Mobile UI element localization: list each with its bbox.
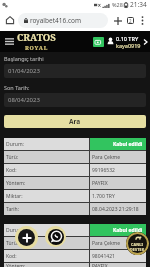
button[interactable]: Miktar: (4, 190, 146, 202)
button[interactable]: Add (15, 226, 38, 249)
staticText: Başlangıç tarihi (4, 55, 44, 62)
staticText: kaya0919 (116, 42, 141, 49)
staticText: 21:34 (130, 0, 147, 9)
button[interactable]: Türü: (4, 151, 146, 163)
staticText: Kabul edildi (113, 141, 143, 148)
button[interactable]: Durum: (4, 138, 146, 150)
button[interactable]: Canlı Destek (126, 232, 149, 255)
staticText: royalbet416.com (30, 16, 82, 25)
staticText: Durum: (6, 141, 24, 148)
staticText: Para Çekme (92, 154, 121, 161)
button[interactable]: Durum: (4, 224, 146, 236)
button[interactable]: Menu (3, 35, 16, 48)
staticText: Son Tarih: (4, 84, 30, 91)
staticText: 0.10 TRY (116, 35, 139, 42)
staticText: Türü: (6, 154, 19, 161)
staticText: PAYFIX (92, 263, 108, 267)
staticText: Kod: (6, 167, 17, 174)
staticText: Türü: (6, 240, 19, 247)
staticText: 08.04.2023 21:29:18 (92, 206, 139, 213)
staticText: Ara (69, 117, 81, 126)
staticText: CANLI (131, 242, 144, 247)
button[interactable]: royalbet416.com (18, 13, 108, 28)
staticText: CRATOS (17, 31, 56, 44)
button[interactable]: Kod: (4, 250, 146, 262)
staticText: 1.700 TRY (92, 193, 115, 200)
staticText: Kabul edildi (113, 227, 143, 234)
staticText: DESTEK (130, 247, 145, 252)
staticText: PAYFIX (92, 180, 108, 187)
staticText: Yöntem: (6, 180, 26, 187)
staticText: Durum: (6, 227, 24, 234)
staticText: Para Çekme (92, 240, 121, 247)
button[interactable]: Home (3, 13, 17, 27)
button[interactable]: Ara (4, 115, 146, 128)
button[interactable]: 08/04/2023 (4, 93, 146, 107)
button[interactable]: Tabs (124, 14, 137, 27)
staticText: 2 (129, 18, 132, 24)
button[interactable]: Kod: (4, 164, 146, 176)
staticText: ROYAL (25, 44, 49, 51)
button[interactable]: Deposit (93, 37, 104, 47)
staticText: 01/04/2023 (8, 67, 40, 75)
button[interactable]: Yöntem: (4, 177, 146, 189)
button[interactable]: 01/04/2023 (4, 64, 146, 78)
staticText: Kod: (6, 253, 17, 260)
staticText: Miktar: (6, 193, 23, 200)
button[interactable]: Yöntem: (4, 263, 146, 267)
staticText: Yöntem: (6, 263, 26, 267)
staticText: 99196532 (92, 167, 115, 174)
staticText: 08/04/2023 (8, 96, 40, 104)
button[interactable]: New tab (111, 14, 124, 27)
button[interactable]: More options (137, 15, 148, 26)
staticText: Tarih: (6, 206, 19, 213)
button[interactable]: Tarih: (4, 203, 146, 215)
staticText: %28 (112, 1, 123, 8)
staticText: 98041421 (92, 253, 115, 260)
button[interactable]: Türü: (4, 237, 146, 249)
button[interactable]: WhatsApp (45, 226, 66, 247)
